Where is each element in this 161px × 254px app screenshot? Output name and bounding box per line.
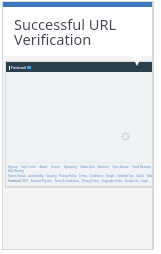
staticText: Fastmail bbox=[11, 65, 26, 70]
button[interactable]: Bird Hosting bbox=[8, 169, 24, 173]
staticText: 2015 Fastmail Pty Ltd. Terms & Condition… bbox=[22, 179, 149, 183]
staticText: Fastmail bbox=[8, 179, 21, 183]
button[interactable]: System Status Accessibility Security Pri… bbox=[8, 174, 153, 178]
staticText: Successful URL Verification bbox=[14, 14, 117, 49]
button[interactable]: Sign up Help Center About Careers Upcomi… bbox=[8, 165, 154, 169]
button[interactable]: Fastmail home bbox=[9, 65, 31, 70]
